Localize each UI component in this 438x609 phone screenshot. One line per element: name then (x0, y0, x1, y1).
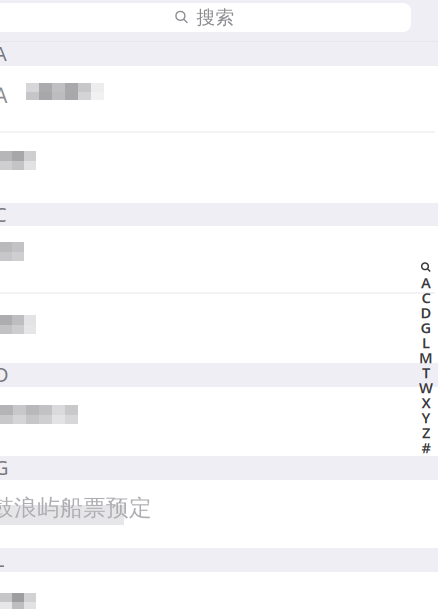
button[interactable]: 鼓浪屿船票预定 (0, 480, 438, 548)
staticText: D (420, 303, 431, 322)
staticText: T (422, 363, 430, 382)
staticText: C (0, 201, 7, 228)
staticText: G (420, 318, 431, 337)
staticText: 鼓浪屿船票预定 (0, 494, 152, 522)
staticText: 搜索 (196, 6, 234, 29)
button[interactable] (0, 387, 438, 456)
staticText: # (421, 438, 430, 457)
staticText: A (0, 40, 7, 67)
button[interactable]: L (418, 335, 434, 350)
button[interactable]: A (418, 275, 434, 290)
button[interactable]: Search index (418, 260, 434, 275)
staticText: C (421, 288, 430, 307)
button[interactable]: # (418, 440, 434, 455)
staticText: G (0, 454, 9, 481)
button[interactable]: A (0, 66, 438, 133)
button[interactable] (0, 294, 438, 363)
staticText: M (419, 348, 433, 367)
button[interactable]: 搜索 (0, 3, 411, 32)
staticText: A (421, 273, 431, 292)
button[interactable]: T (418, 365, 434, 380)
button[interactable] (0, 572, 438, 609)
button[interactable]: Y (418, 410, 434, 425)
staticText: A (0, 81, 8, 109)
button[interactable] (0, 226, 438, 294)
button[interactable] (0, 133, 438, 203)
staticText: Z (422, 423, 430, 442)
staticText: X (421, 393, 430, 412)
button[interactable]: G (418, 320, 434, 335)
staticText: D (0, 361, 9, 388)
staticText: L (422, 333, 430, 352)
button[interactable]: X (418, 395, 434, 410)
button[interactable]: M (418, 350, 434, 365)
staticText: L (0, 546, 4, 573)
button[interactable]: D (418, 305, 434, 320)
staticText: Y (421, 408, 430, 427)
button[interactable]: C (418, 290, 434, 305)
button[interactable]: W (418, 380, 434, 395)
button[interactable]: Z (418, 425, 434, 440)
staticText: W (419, 378, 433, 397)
